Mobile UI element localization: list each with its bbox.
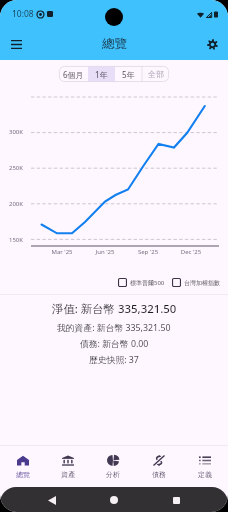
staticText: Mar '25 bbox=[50, 248, 74, 256]
staticText: 總覽 bbox=[102, 36, 127, 52]
staticText: 債務: 新台幣 0.00 bbox=[80, 338, 149, 350]
button[interactable]: 全部 bbox=[142, 66, 169, 82]
staticText: Sep '25 bbox=[136, 248, 160, 256]
button[interactable]: 資產 bbox=[45, 446, 90, 487]
button[interactable]: Recent apps bbox=[166, 490, 186, 510]
staticText: 標準普爾500 bbox=[130, 279, 165, 287]
button[interactable]: 總覽 bbox=[0, 446, 45, 487]
button[interactable]: 1年 bbox=[88, 66, 115, 82]
staticText: 我的資產: 新台幣 335,321.50 bbox=[57, 322, 171, 334]
staticText: 定義 bbox=[198, 470, 212, 479]
button[interactable]: 6個月 bbox=[59, 66, 88, 82]
staticText: 歷史快照: 37 bbox=[89, 354, 139, 366]
button[interactable]: Home bbox=[104, 490, 124, 510]
staticText: 250K bbox=[9, 164, 24, 172]
staticText: 全部 bbox=[148, 69, 164, 79]
staticText: 總覽 bbox=[16, 470, 30, 479]
staticText: 台灣加權指數 bbox=[184, 279, 220, 287]
button[interactable]: Back bbox=[42, 490, 62, 510]
button[interactable]: Settings bbox=[200, 32, 224, 56]
staticText: 6個月 bbox=[63, 69, 84, 80]
staticText: 10:08 bbox=[12, 8, 34, 20]
button[interactable]: 5年 bbox=[115, 66, 142, 82]
button[interactable]: 標準普爾500 bbox=[118, 278, 165, 287]
staticText: 淨值: 新台幣 335,321.50 bbox=[52, 301, 177, 317]
staticText: 300K bbox=[9, 128, 24, 136]
staticText: 分析 bbox=[106, 470, 120, 479]
staticText: 150K bbox=[9, 236, 24, 244]
button[interactable]: 分析 bbox=[90, 446, 136, 487]
staticText: 200K bbox=[9, 200, 24, 208]
button[interactable]: 台灣加權指數 bbox=[172, 278, 220, 287]
staticText: 1年 bbox=[95, 69, 108, 80]
staticText: 5年 bbox=[122, 69, 135, 80]
staticText: Dec '25 bbox=[179, 248, 203, 256]
staticText: 債務 bbox=[152, 470, 166, 479]
button[interactable]: 債務 bbox=[136, 446, 182, 487]
button[interactable]: 定義 bbox=[182, 446, 228, 487]
staticText: 資產 bbox=[61, 470, 75, 479]
button[interactable]: Open navigation menu bbox=[4, 32, 28, 56]
staticText: Jun '25 bbox=[93, 248, 117, 256]
